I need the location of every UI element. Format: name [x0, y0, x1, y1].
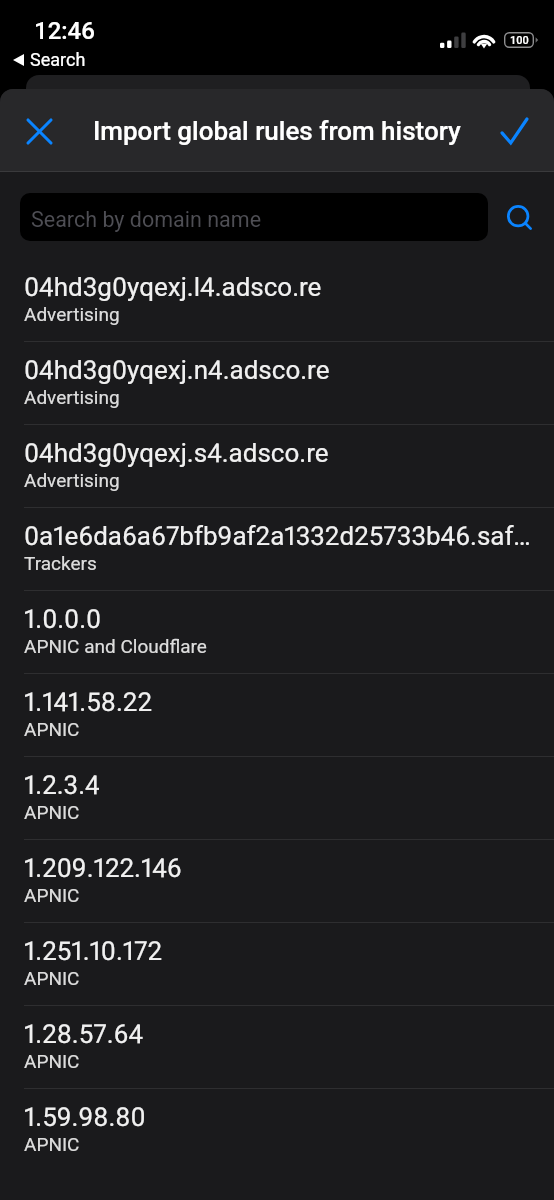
button[interactable]: 1.2.3.4: [0, 757, 554, 840]
button[interactable]: Close: [11, 103, 67, 159]
staticText: 1.28.57.64: [24, 1019, 144, 1049]
button[interactable]: 1.59.98.80: [0, 1089, 554, 1172]
staticText: Advertising: [24, 386, 120, 408]
staticText: Trackers: [24, 552, 97, 574]
staticText: Advertising: [24, 469, 120, 491]
staticText: 0a1e6da6a67bfb9af2a1332d25733b46.safefra…: [24, 521, 538, 551]
staticText: Search: [30, 49, 86, 70]
staticText: APNIC: [24, 884, 80, 906]
button[interactable]: 04hd3g0yqexj.l4.adsco.re: [0, 259, 554, 342]
staticText: APNIC: [24, 801, 80, 823]
staticText: 04hd3g0yqexj.n4.adsco.re: [24, 355, 330, 385]
button[interactable]: 1.141.58.22: [0, 674, 554, 757]
staticText: APNIC and Cloudflare: [24, 635, 207, 657]
staticText: 100: [510, 34, 529, 47]
staticText: Search by domain name: [31, 207, 262, 232]
button[interactable]: 1.0.0.0: [0, 591, 554, 674]
button[interactable]: 1.28.57.64: [0, 1006, 554, 1089]
staticText: APNIC: [24, 1133, 80, 1155]
button[interactable]: 0a1e6da6a67bfb9af2a1332d25733b46.safefra…: [0, 508, 554, 591]
staticText: 1.251.10.172: [24, 936, 163, 966]
staticText: 1.0.0.0: [24, 604, 102, 634]
staticText: 1.2.3.4: [24, 770, 100, 800]
staticText: 04hd3g0yqexj.s4.adsco.re: [24, 438, 329, 468]
button[interactable]: 1.209.122.146: [0, 840, 554, 923]
staticText: APNIC: [24, 967, 80, 989]
staticText: 04hd3g0yqexj.l4.adsco.re: [24, 272, 322, 302]
staticText: 1.209.122.146: [24, 853, 182, 883]
button[interactable]: Search: [495, 193, 543, 241]
button[interactable]: 1.251.10.172: [0, 923, 554, 1006]
button[interactable]: Search by domain name: [20, 193, 488, 241]
staticText: Advertising: [24, 303, 120, 325]
staticText: 1.59.98.80: [24, 1102, 146, 1132]
staticText: APNIC: [24, 1050, 80, 1072]
staticText: APNIC: [24, 718, 80, 740]
button[interactable]: 04hd3g0yqexj.s4.adsco.re: [0, 425, 554, 508]
staticText: 12:46: [34, 17, 95, 45]
staticText: Import global rules from history: [93, 116, 461, 146]
button[interactable]: 04hd3g0yqexj.n4.adsco.re: [0, 342, 554, 425]
staticText: 1.141.58.22: [24, 687, 152, 717]
button[interactable]: Confirm: [486, 103, 542, 159]
